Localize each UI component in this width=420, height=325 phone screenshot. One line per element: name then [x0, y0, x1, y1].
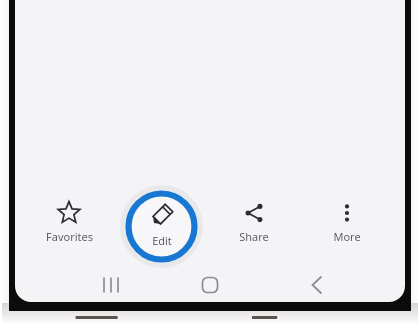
staticText: Favorites	[46, 229, 93, 244]
button[interactable]: Favorites	[32, 196, 106, 254]
staticText: Share	[239, 229, 269, 244]
button[interactable]: Back	[306, 274, 328, 296]
button[interactable]: More	[310, 196, 384, 254]
button[interactable]: Share	[217, 196, 291, 254]
button[interactable]: Edit	[123, 188, 200, 265]
staticText: More	[333, 229, 361, 244]
button[interactable]: Recents	[100, 274, 122, 296]
button[interactable]: Home	[199, 274, 221, 296]
staticText: Edit	[152, 233, 172, 248]
